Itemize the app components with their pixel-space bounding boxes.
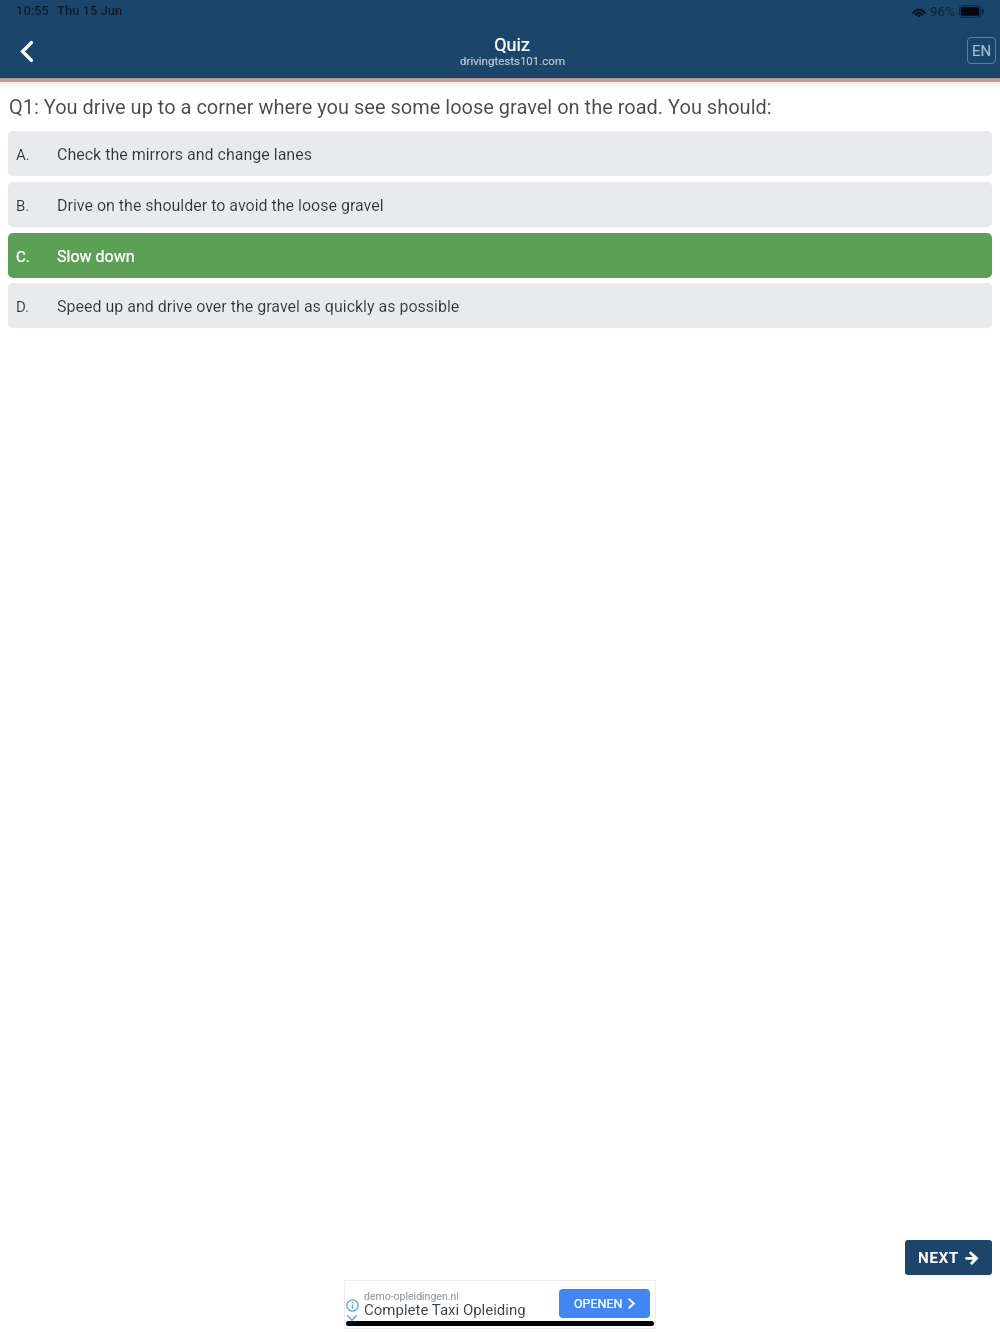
button[interactable]: demo-opleidingen.nl — [344, 1280, 656, 1329]
staticText: Speed up and drive over the gravel as qu… — [57, 297, 460, 316]
button[interactable]: EN — [967, 37, 996, 64]
staticText: Slow down — [57, 247, 135, 266]
button[interactable]: NEXT — [905, 1240, 992, 1275]
staticText: demo-opleidingen.nl — [364, 1290, 459, 1302]
staticText: Q1: You drive up to a corner where you s… — [9, 95, 772, 118]
button[interactable]: OPENEN — [559, 1289, 650, 1318]
button[interactable]: D. — [8, 283, 992, 328]
staticText: EN — [972, 42, 992, 60]
staticText: drivingtests101.com — [460, 54, 565, 67]
button[interactable]: Back — [6, 30, 48, 72]
button[interactable]: B. — [8, 182, 992, 227]
staticText: D. — [16, 298, 30, 316]
staticText: Complete Taxi Opleiding — [364, 1301, 526, 1319]
staticText: Quiz — [494, 34, 530, 55]
button[interactable]: C. — [8, 233, 992, 278]
staticText: Check the mirrors and change lanes — [57, 145, 312, 164]
staticText: C. — [16, 248, 30, 266]
staticText: NEXT — [918, 1249, 959, 1267]
staticText: 96% — [930, 3, 956, 19]
staticText: B. — [16, 197, 30, 215]
staticText: A. — [16, 146, 30, 164]
staticText: 10:55 — [16, 3, 49, 18]
staticText: Drive on the shoulder to avoid the loose… — [57, 196, 384, 215]
staticText: Thu 15 Jun — [57, 3, 123, 18]
button[interactable]: A. — [8, 131, 992, 176]
staticText: OPENEN — [574, 1296, 623, 1311]
